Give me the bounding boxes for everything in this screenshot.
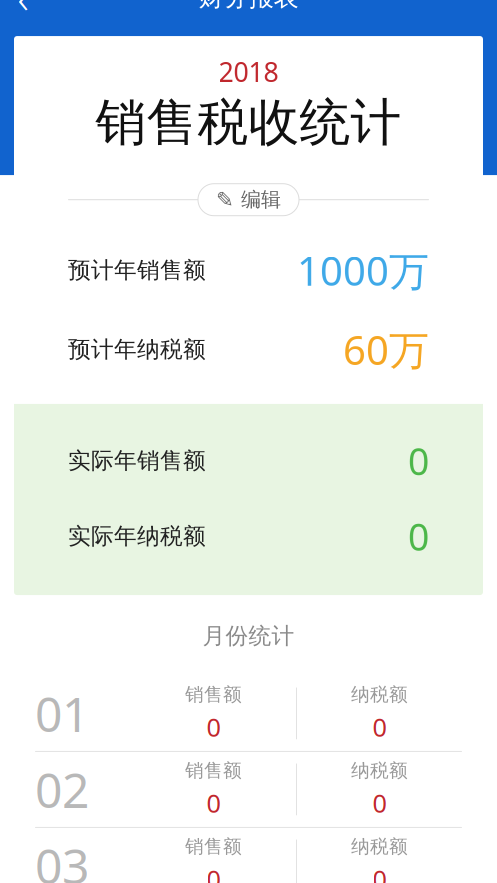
staticText: 0 — [372, 710, 386, 744]
staticText: 财务报表 — [198, 0, 298, 13]
staticText: 销售税收统计 — [95, 91, 401, 154]
staticText: 纳税额 — [351, 683, 408, 706]
staticText: 02 — [35, 757, 89, 821]
staticText: 1000万 — [297, 244, 429, 297]
staticText: 编辑 — [241, 187, 281, 212]
staticText: 01 — [35, 681, 89, 745]
staticText: 月份统计 — [202, 622, 294, 650]
staticText: ✎ — [216, 188, 234, 212]
staticText: 预计年纳税额 — [68, 335, 206, 363]
staticText: 实际年销售额 — [68, 447, 206, 475]
staticText: 0 — [372, 862, 386, 883]
button[interactable]: Back — [0, 0, 46, 19]
staticText: 2018 — [218, 54, 278, 89]
staticText: 纳税额 — [351, 835, 408, 858]
staticText: 0 — [206, 862, 220, 883]
staticText: 销售额 — [185, 835, 242, 858]
button[interactable]: ✎ — [198, 184, 299, 216]
staticText: 0 — [372, 786, 386, 820]
staticText: 0 — [408, 436, 429, 485]
staticText: 60万 — [343, 323, 429, 376]
staticText: 0 — [408, 511, 429, 561]
staticText: 销售额 — [185, 759, 242, 782]
staticText: 纳税额 — [351, 759, 408, 782]
staticText: 实际年纳税额 — [68, 522, 206, 550]
staticText: 0 — [206, 710, 220, 744]
staticText: 预计年销售额 — [68, 256, 206, 284]
staticText: 03 — [35, 833, 89, 883]
staticText: 销售额 — [185, 683, 242, 706]
staticText: 0 — [206, 786, 220, 820]
staticText: ‹ — [17, 0, 28, 25]
